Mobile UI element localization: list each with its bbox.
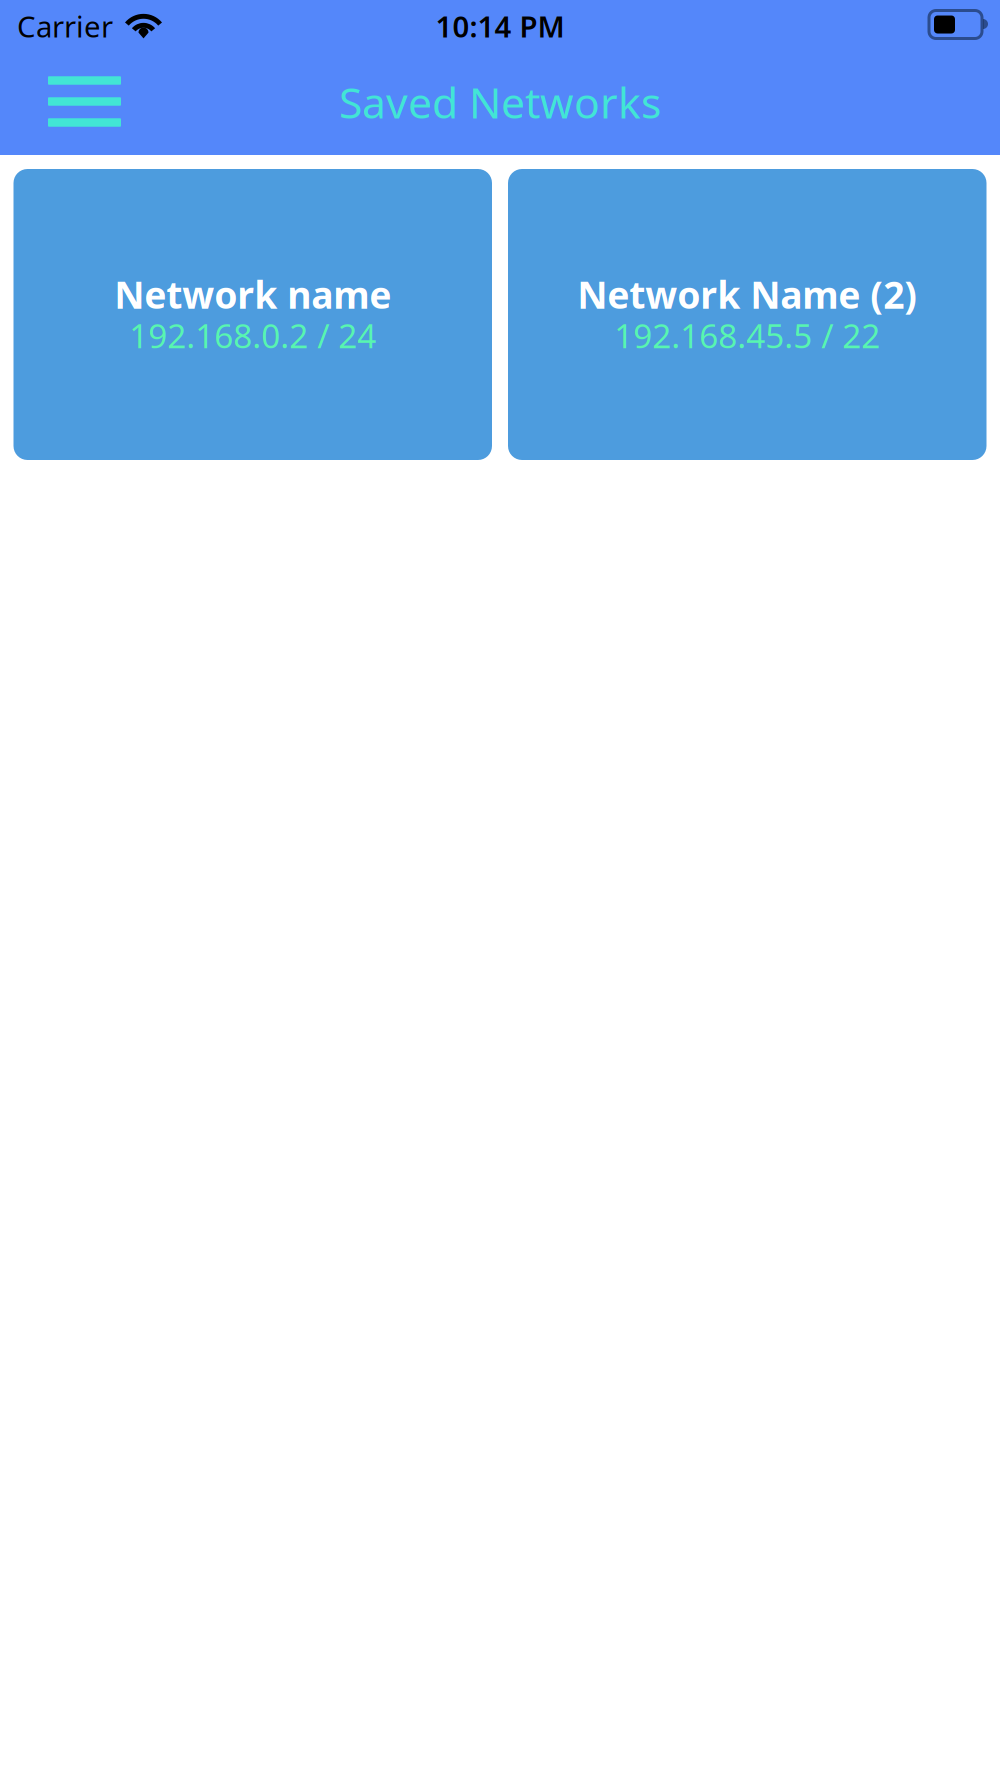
button[interactable]: Menu [34,64,135,139]
button[interactable]: Network Name (2) [508,169,986,460]
button[interactable]: Network name [13,169,492,460]
staticText: Saved Networks [339,74,661,130]
staticText: 192.168.45.5 / 22 [614,313,880,357]
staticText: 192.168.0.2 / 24 [129,313,376,357]
staticText: Network Name (2) [577,270,917,319]
staticText: Carrier [17,6,113,45]
staticText: 10:14 PM [435,6,564,45]
staticText: Network name [114,270,391,319]
